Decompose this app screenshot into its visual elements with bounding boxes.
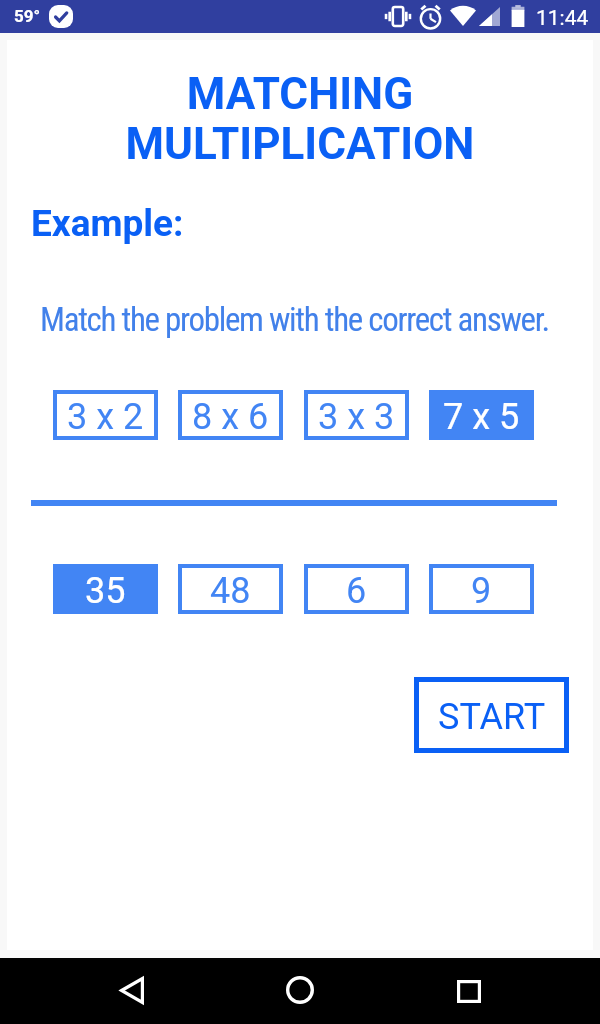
staticText: Match the problem with the correct answe… xyxy=(40,300,549,339)
staticText: 59° xyxy=(14,6,41,26)
button[interactable]: 3 x 3 xyxy=(304,390,409,440)
button[interactable]: Home xyxy=(276,966,324,1014)
staticText: 6 xyxy=(346,570,367,612)
staticText: 8 x 6 xyxy=(192,396,269,438)
button[interactable]: 9 xyxy=(429,564,534,614)
staticText: 48 xyxy=(210,570,251,612)
button[interactable]: 7 x 5 xyxy=(429,390,534,440)
staticText: 35 xyxy=(85,570,126,612)
staticText: MATCHING MULTIPLICATION xyxy=(0,68,600,169)
staticText: START xyxy=(438,696,546,738)
button[interactable]: Recent apps xyxy=(445,967,493,1015)
button[interactable]: 6 xyxy=(304,564,409,614)
button[interactable]: 48 xyxy=(178,564,283,614)
button[interactable]: 35 xyxy=(53,564,158,614)
button[interactable]: START xyxy=(414,677,569,753)
staticText: Example: xyxy=(31,202,184,245)
button[interactable]: Back xyxy=(108,966,156,1014)
staticText: 11:44 xyxy=(536,6,589,31)
button[interactable]: 3 x 2 xyxy=(53,390,158,440)
staticText: 3 x 3 xyxy=(318,396,395,438)
staticText: 3 x 2 xyxy=(67,396,144,438)
button[interactable]: 8 x 6 xyxy=(178,390,283,440)
staticText: 7 x 5 xyxy=(443,396,520,438)
staticText: 9 xyxy=(471,570,492,612)
